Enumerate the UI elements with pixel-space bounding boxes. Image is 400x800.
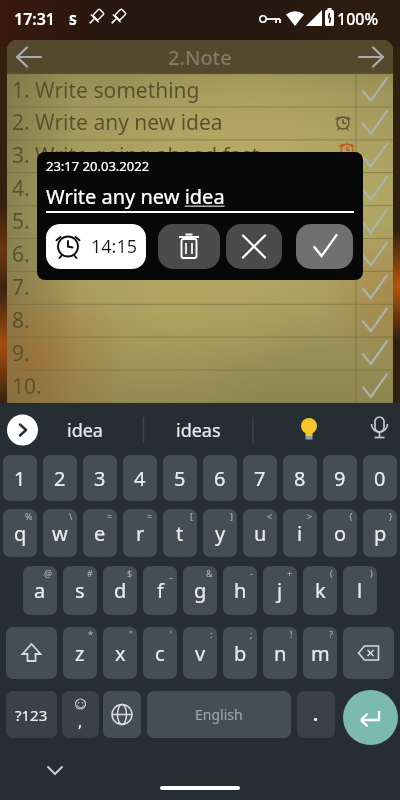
button[interactable] — [6, 627, 57, 679]
button[interactable]: ideas — [160, 412, 236, 448]
button[interactable]: 1 — [3, 455, 37, 501]
button[interactable]: p — [363, 509, 397, 557]
button[interactable]: z — [63, 627, 97, 679]
button[interactable] — [62, 691, 99, 738]
staticText: . — [313, 702, 319, 727]
button[interactable]: 1. Write something — [7, 74, 349, 107]
staticText: ] — [230, 510, 233, 522]
button[interactable]: 5 — [163, 455, 197, 501]
staticText: f — [157, 577, 164, 604]
button[interactable]: 9 — [323, 455, 357, 501]
button[interactable]: . — [297, 691, 335, 738]
button[interactable]: 14:15 — [46, 224, 146, 269]
button[interactable]: y — [203, 509, 237, 557]
button[interactable] — [103, 691, 141, 738]
button[interactable] — [296, 224, 353, 269]
button[interactable]: f — [143, 566, 177, 615]
staticText: - — [250, 567, 253, 579]
staticText: e — [94, 520, 106, 547]
staticText: 3 — [94, 465, 106, 492]
button[interactable]: ?123 — [6, 691, 57, 738]
button[interactable]: English — [147, 691, 291, 738]
staticText: English — [195, 705, 243, 724]
staticText: ( — [330, 567, 333, 579]
button[interactable] — [361, 410, 397, 448]
button[interactable]: g — [183, 566, 217, 615]
button[interactable] — [158, 224, 220, 269]
button[interactable]: l — [343, 566, 377, 615]
staticText: 2 — [54, 465, 66, 492]
button[interactable]: q — [3, 509, 37, 557]
staticText: 1. Write something — [12, 76, 200, 105]
button[interactable]: 0 — [363, 455, 397, 501]
staticText: k — [315, 577, 326, 604]
button[interactable]: 2 — [43, 455, 77, 501]
staticText: q — [14, 520, 27, 547]
staticText: $ — [127, 567, 133, 579]
button[interactable]: i — [283, 509, 317, 557]
button[interactable]: 8 — [283, 455, 317, 501]
button[interactable]: 4 — [123, 455, 157, 501]
button[interactable]: 10. — [7, 370, 349, 403]
button[interactable]: 4. — [7, 172, 349, 205]
button[interactable] — [293, 410, 325, 448]
staticText: 3. Write going ahead fast — [12, 141, 260, 170]
button[interactable]: m — [303, 627, 337, 679]
staticText: 1 — [14, 465, 26, 492]
staticText: m — [311, 640, 330, 667]
staticText: ) — [370, 567, 373, 579]
button[interactable]: 2. Write any new idea — [7, 106, 349, 139]
staticText: l — [357, 577, 363, 604]
button[interactable]: u — [243, 509, 277, 557]
staticText: 9 — [334, 465, 346, 492]
staticText: % — [25, 510, 33, 522]
button[interactable] — [7, 40, 57, 74]
staticText: * — [88, 628, 93, 640]
staticText: _ — [169, 567, 173, 579]
button[interactable]: 5. — [7, 205, 349, 238]
button[interactable]: 3 — [83, 455, 117, 501]
button[interactable]: e — [83, 509, 117, 557]
button[interactable]: 7. — [7, 271, 349, 304]
button[interactable]: r — [123, 509, 157, 557]
staticText: z — [75, 640, 85, 667]
staticText: 2.Note — [168, 44, 232, 71]
button[interactable]: o — [323, 509, 357, 557]
staticText: y — [215, 520, 226, 547]
button[interactable]: s — [63, 566, 97, 615]
button[interactable]: 3. Write going ahead fast — [7, 139, 349, 172]
staticText: ; — [250, 628, 253, 640]
staticText: { — [349, 510, 353, 522]
button[interactable]: k — [303, 566, 337, 615]
button[interactable]: b — [223, 627, 257, 679]
button[interactable] — [5, 412, 41, 448]
staticText: > — [307, 510, 313, 522]
staticText: @ — [44, 567, 53, 579]
button[interactable]: d — [103, 566, 137, 615]
button[interactable]: 6. — [7, 238, 349, 271]
button[interactable] — [343, 627, 394, 679]
staticText: + — [287, 567, 293, 579]
button[interactable]: a — [23, 566, 57, 615]
staticText: 5 — [174, 465, 186, 492]
button[interactable]: t — [163, 509, 197, 557]
button[interactable]: v — [183, 627, 217, 679]
button[interactable]: 9. — [7, 337, 349, 370]
staticText: u — [254, 520, 267, 547]
button[interactable]: w — [43, 509, 77, 557]
staticText: 7. — [12, 273, 30, 302]
button[interactable] — [343, 690, 398, 745]
button[interactable] — [40, 757, 70, 783]
button[interactable]: 8. — [7, 304, 349, 337]
staticText: s — [75, 577, 85, 604]
button[interactable]: j — [263, 566, 297, 615]
button[interactable] — [226, 224, 282, 269]
button[interactable]: n — [263, 627, 297, 679]
button[interactable]: x — [103, 627, 137, 679]
button[interactable] — [343, 40, 393, 74]
button[interactable]: c — [143, 627, 177, 679]
button[interactable]: h — [223, 566, 257, 615]
button[interactable]: idea — [52, 412, 118, 448]
button[interactable]: 7 — [243, 455, 277, 501]
button[interactable]: 6 — [203, 455, 237, 501]
